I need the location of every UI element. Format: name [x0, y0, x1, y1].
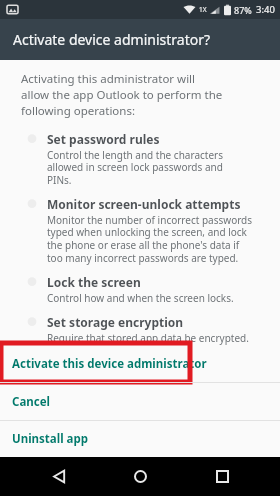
staticText: 1X: [199, 5, 207, 14]
staticText: Control the length and the characters al…: [47, 148, 223, 187]
button[interactable]: Uninstall app: [0, 421, 280, 457]
button[interactable]: Home: [117, 457, 163, 496]
button[interactable]: Activate this device administrator: [0, 345, 280, 382]
staticText: Set password rules: [47, 131, 160, 147]
staticText: 3:40: [256, 3, 275, 16]
staticText: Set storage encryption: [47, 314, 184, 330]
button[interactable]: Back: [36, 457, 82, 496]
staticText: Activate this device administrator: [12, 356, 207, 372]
staticText: 87%: [234, 4, 252, 16]
button[interactable]: Cancel: [0, 383, 280, 420]
button[interactable]: Recent apps: [199, 457, 245, 496]
staticText: Lock the screen: [47, 274, 141, 290]
staticText: Activating this administrator will allow…: [21, 71, 223, 119]
staticText: Uninstall app: [12, 431, 89, 447]
staticText: Cancel: [12, 394, 50, 410]
staticText: Monitor the number of incorrect password…: [47, 213, 253, 265]
staticText: Activate device administrator?: [13, 30, 211, 49]
staticText: Require that stored app data be encrypte…: [47, 331, 249, 345]
staticText: Control how and when the screen locks.: [47, 291, 234, 305]
staticText: Monitor screen-unlock attempts: [47, 196, 241, 212]
